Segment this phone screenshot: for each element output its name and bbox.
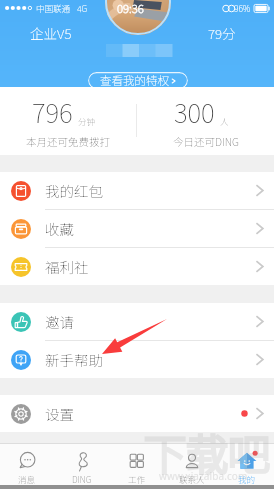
button[interactable]: 福利社 [0, 248, 274, 285]
staticText: 新手帮助 [45, 349, 103, 370]
button[interactable]: 我的红包 [0, 172, 274, 209]
staticText: 本月还可免费拨打 [26, 134, 110, 149]
button[interactable]: 300 [137, 87, 274, 155]
staticText: 09:36 [117, 0, 144, 17]
button[interactable]: 我的 [219, 444, 274, 485]
button[interactable]: 查看我的特权 [88, 72, 188, 89]
staticText: 300 [174, 93, 215, 131]
staticText: 福利社 [45, 256, 89, 277]
staticText: 设置 [45, 403, 74, 424]
button[interactable]: 联系人 [164, 444, 219, 485]
staticText: 79分 [208, 23, 236, 43]
staticText: 96% [234, 2, 251, 14]
button[interactable]: 消息 [0, 444, 54, 485]
staticText: 4G [77, 2, 88, 14]
staticText: 分钟 [78, 115, 96, 127]
button[interactable]: 收藏 [0, 210, 274, 247]
staticText: 我的 [238, 473, 256, 485]
staticText: DING [72, 473, 92, 485]
staticText: 邀请 [45, 311, 74, 332]
button[interactable]: 邀请 [0, 303, 274, 340]
staticText: 联系人 [179, 473, 205, 485]
staticText: 收藏 [45, 218, 74, 239]
button[interactable]: 工作 [109, 444, 164, 485]
staticText: 中国联通 [36, 2, 71, 14]
button[interactable]: DING [54, 444, 109, 485]
staticText: 今日还可DING [173, 134, 239, 149]
staticText: 消息 [18, 473, 36, 485]
staticText: 人 [220, 115, 229, 127]
staticText: 796 [32, 93, 73, 131]
staticText: www.xiazaiba.com [159, 469, 248, 483]
button[interactable]: 新手帮助 [0, 341, 274, 378]
staticText: 下载吧 [144, 421, 271, 482]
staticText: 工作 [128, 473, 146, 485]
button[interactable]: Profile photo [105, 0, 171, 35]
staticText: 企业V5 [30, 23, 72, 43]
staticText: 查看我的特权 [100, 72, 169, 89]
button[interactable]: 设置 [0, 395, 274, 432]
staticText: 我的红包 [45, 180, 103, 201]
button[interactable]: 796 [0, 87, 136, 155]
